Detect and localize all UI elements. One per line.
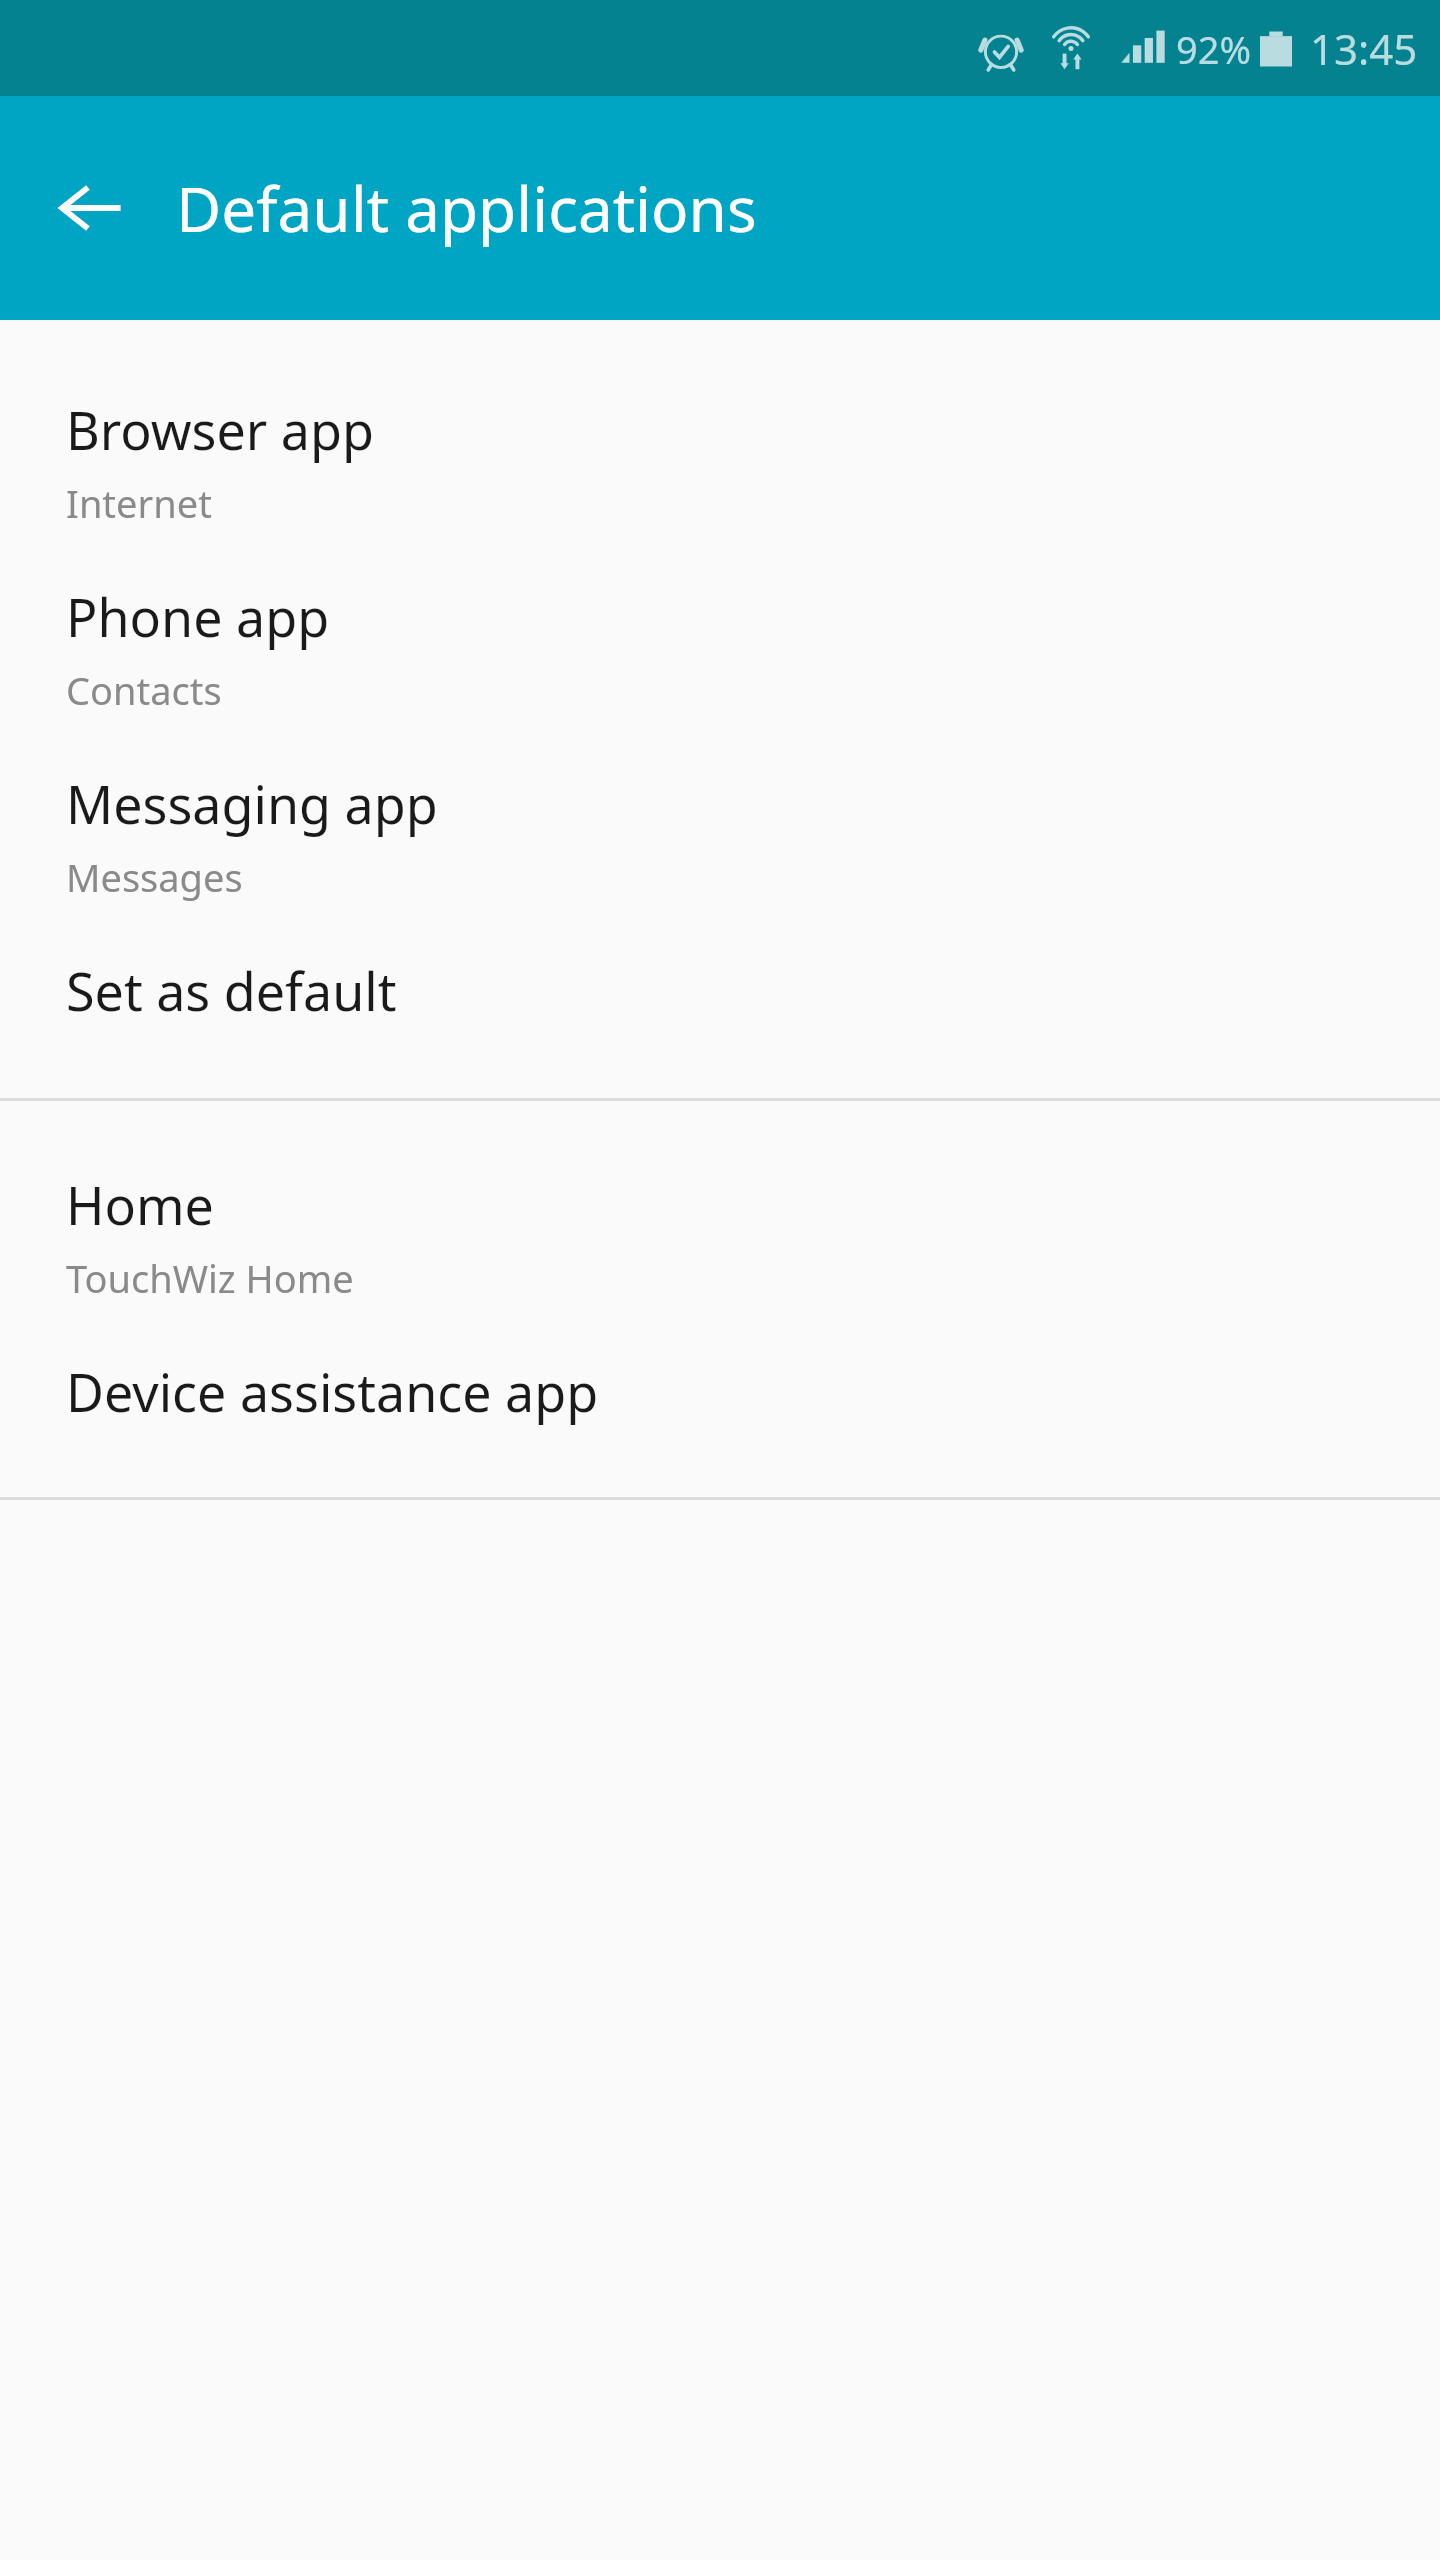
staticText: 13:45 — [1310, 20, 1418, 77]
staticText: 92% — [1176, 23, 1252, 75]
button[interactable]: Messaging app — [0, 742, 1440, 929]
button[interactable]: Phone app — [0, 555, 1440, 742]
staticText: Contacts — [66, 664, 222, 716]
staticText: Phone app — [66, 581, 330, 652]
button[interactable]: Browser app — [0, 368, 1440, 555]
staticText: Home — [66, 1169, 214, 1240]
button[interactable]: Back — [42, 160, 138, 256]
button[interactable]: Home — [0, 1143, 1440, 1330]
button[interactable]: Set as default — [0, 929, 1440, 1052]
staticText: Device assistance app — [66, 1356, 599, 1427]
staticText: Messages — [66, 851, 243, 903]
staticText: TouchWiz Home — [66, 1252, 354, 1304]
staticText: Browser app — [66, 394, 374, 465]
staticText: Messaging app — [66, 768, 438, 839]
button[interactable]: Device assistance app — [0, 1330, 1440, 1453]
staticText: Internet — [66, 477, 212, 529]
staticText: Set as default — [66, 955, 397, 1026]
staticText: Default applications — [176, 166, 757, 250]
